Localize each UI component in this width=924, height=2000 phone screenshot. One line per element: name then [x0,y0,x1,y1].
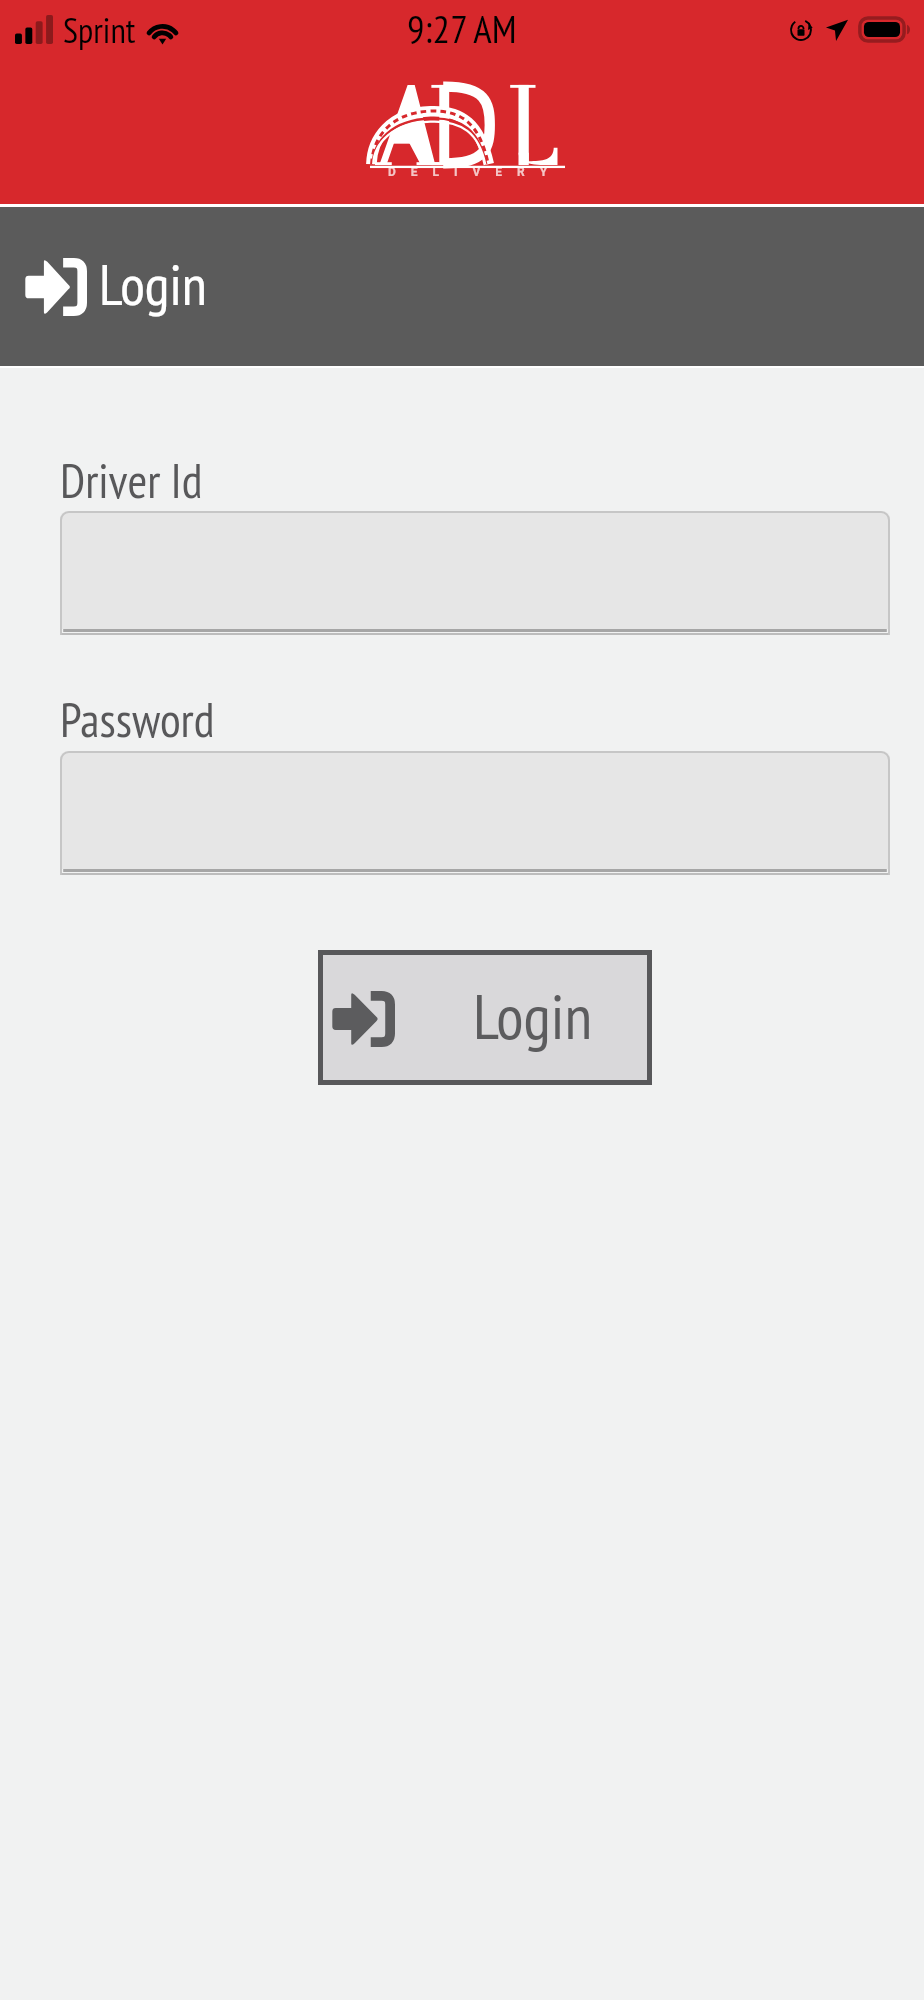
button[interactable] [60,511,890,635]
staticText: Login [99,247,207,321]
staticText: Login [473,975,593,1057]
button[interactable]: Login [318,950,652,1085]
staticText: 9:27 AM [407,3,517,53]
other: Battery [858,16,911,43]
button[interactable]: Login [0,207,924,366]
button[interactable] [60,751,890,875]
staticText: Password [60,688,215,750]
staticText: Driver Id [60,449,203,511]
other: Location [825,18,849,42]
staticText: Sprint [63,7,136,52]
staticText: D E L I V E R Y [388,165,554,179]
other: Rotation lock [788,17,814,43]
